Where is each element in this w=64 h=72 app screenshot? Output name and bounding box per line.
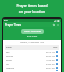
button[interactable]: Notification for Fajr — [56, 51, 58, 53]
button[interactable]: Fajr — [5, 50, 59, 54]
staticText: 05:12 AM — [46, 51, 55, 54]
staticText: in 01:24:30 — [3, 35, 61, 38]
button[interactable]: NEXT: MAGHRIB — [21, 29, 44, 34]
button[interactable]: Notification for Maghrib — [56, 67, 58, 69]
staticText: 12:45 PM — [46, 59, 55, 62]
button[interactable]: Notification for Asr — [56, 63, 58, 65]
button[interactable]: Notification for Dhuhr — [56, 59, 58, 61]
staticText: 9:41 — [4, 19, 8, 22]
staticText: Prayer times based — [0, 3, 64, 8]
button[interactable]: Isha — [5, 70, 59, 71]
button[interactable]: Maghrib — [5, 66, 59, 70]
staticText: Maghrib — [6, 67, 14, 70]
staticText: Prayer Times — [5, 23, 22, 27]
staticText: 06:34 AM — [46, 55, 55, 58]
staticText: 06:51 PM — [46, 67, 55, 70]
staticText: Sunrise — [6, 55, 13, 58]
staticText: Asr — [6, 63, 10, 66]
staticText: Monday, 14 Ramadan 1445 — [5, 41, 59, 44]
staticText: Fajr — [6, 51, 10, 54]
button[interactable]: Sunrise — [5, 54, 59, 58]
button[interactable]: Asr — [5, 62, 59, 66]
button[interactable]: Search — [52, 23, 55, 26]
staticText: 04:02 PM — [46, 63, 55, 66]
staticText: Time — [53, 46, 58, 49]
button[interactable]: Notification for Sunrise — [56, 55, 58, 57]
button[interactable]: Dhuhr — [5, 58, 59, 62]
staticText: Prayer — [6, 46, 12, 49]
staticText: Dhuhr — [6, 59, 12, 62]
staticText: NEXT: MAGHRIB — [24, 30, 41, 33]
button[interactable]: More options — [56, 23, 59, 26]
staticText: on your location — [0, 9, 64, 14]
